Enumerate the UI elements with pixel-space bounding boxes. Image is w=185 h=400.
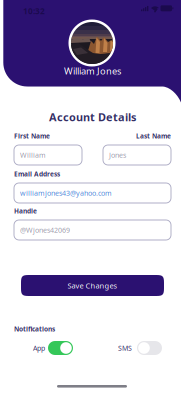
- staticText: williamjones43@yahoo.com: [20, 188, 112, 198]
- staticText: Account Details: [49, 110, 136, 124]
- button[interactable]: williamjones43@yahoo.com: [14, 183, 171, 203]
- staticText: William Jones: [64, 65, 121, 77]
- staticText: First Name: [14, 132, 50, 140]
- staticText: Last Name: [136, 132, 171, 140]
- staticText: App: [33, 343, 45, 353]
- button[interactable]: Jones: [103, 145, 171, 165]
- staticText: Notifications: [14, 325, 55, 333]
- staticText: Email Address: [14, 170, 60, 178]
- staticText: Save Changes: [67, 280, 117, 291]
- button[interactable]: Save Changes: [21, 275, 164, 296]
- staticText: SMS: [118, 343, 132, 353]
- button[interactable]: William: [14, 145, 82, 165]
- staticText: Handle: [14, 207, 37, 215]
- button[interactable]: App notifications on: [48, 341, 73, 355]
- staticText: William: [20, 150, 46, 160]
- staticText: Jones: [109, 150, 126, 160]
- staticText: @Wjones42069: [20, 225, 70, 235]
- button[interactable]: @Wjones42069: [14, 220, 171, 240]
- button[interactable]: SMS notifications off: [137, 341, 162, 355]
- staticText: 10:32: [23, 5, 45, 17]
